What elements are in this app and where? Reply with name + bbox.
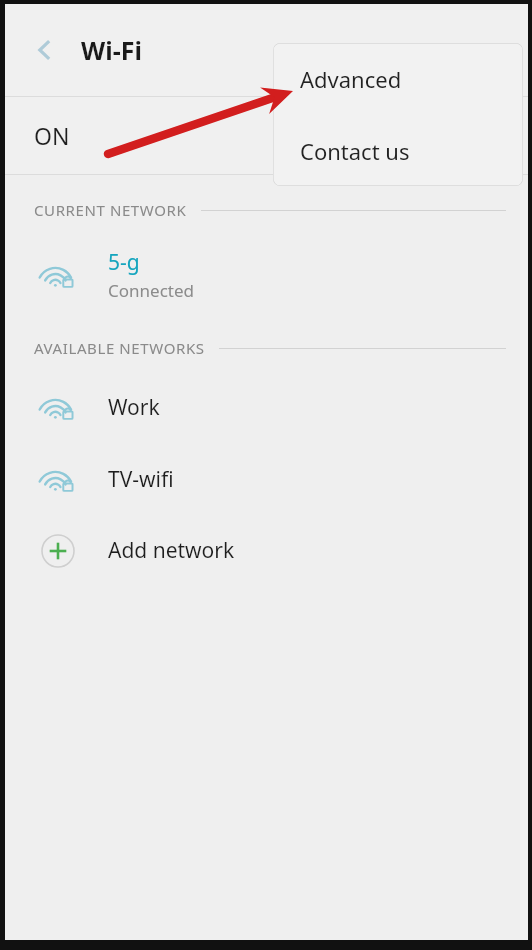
staticText: Work [108,393,160,422]
button[interactable]: Advanced [273,43,523,115]
staticText: 5-g [108,248,140,277]
staticText: Add network [108,536,235,565]
button[interactable]: Work [5,371,528,443]
button[interactable]: TV-wifi [5,443,528,515]
button[interactable]: Add network [5,515,528,586]
staticText: CURRENT NETWORK [34,200,187,220]
button[interactable]: Back [23,28,67,72]
staticText: Wi-Fi [81,33,142,67]
button[interactable]: 5-g [5,239,528,311]
staticText: Contact us [300,136,410,166]
staticText: TV-wifi [108,465,174,494]
staticText: Advanced [300,64,402,94]
staticText: Connected [108,279,194,302]
button[interactable]: Contact us [273,115,523,186]
staticText: ON [34,120,70,151]
button[interactable]: ON [5,97,528,174]
staticText: AVAILABLE NETWORKS [34,338,205,358]
